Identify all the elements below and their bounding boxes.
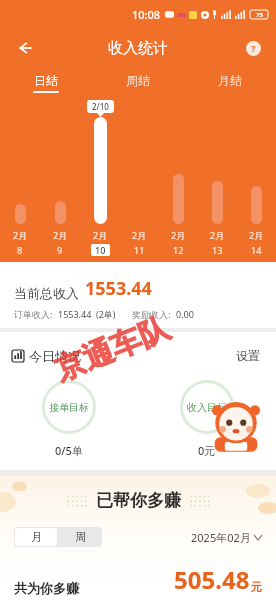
- staticText: 收入目标: [187, 401, 227, 414]
- staticText: 9: [57, 244, 63, 256]
- staticText: 京通车队: [49, 309, 175, 389]
- staticText: 0.00: [176, 308, 194, 320]
- staticText: 今日情况: [29, 348, 81, 364]
- staticText: 10:08: [132, 7, 161, 22]
- staticText: 505.48: [174, 563, 250, 596]
- button[interactable]: 月: [15, 528, 57, 546]
- staticText: 2月: [93, 229, 108, 241]
- staticText: 2025年02月: [191, 530, 251, 545]
- button[interactable]: [159, 98, 198, 224]
- staticText: 已帮你多赚: [96, 490, 181, 511]
- staticText: 周: [75, 530, 86, 544]
- button[interactable]: 日结: [0, 68, 92, 98]
- staticText: 1553.44: [58, 308, 92, 320]
- staticText: 11: [134, 244, 145, 256]
- staticText: 10: [95, 244, 106, 256]
- staticText: 订单收入:: [14, 308, 53, 320]
- button[interactable]: 收入目标: [138, 380, 276, 458]
- button[interactable]: [40, 98, 80, 224]
- staticText: 2月: [249, 229, 264, 241]
- staticText: 12: [173, 244, 184, 256]
- button[interactable]: 2/10: [80, 98, 120, 224]
- staticText: 0/5单: [55, 443, 83, 458]
- staticText: 2月: [13, 229, 28, 241]
- staticText: 日结: [34, 73, 58, 88]
- button[interactable]: 月结: [184, 68, 276, 98]
- staticText: 2月: [171, 229, 186, 241]
- button[interactable]: [198, 98, 237, 224]
- staticText: 14: [251, 244, 262, 256]
- staticText: 月结: [218, 73, 242, 88]
- staticText: 8: [17, 244, 23, 256]
- button[interactable]: Help: [240, 35, 266, 61]
- button[interactable]: 设置: [232, 344, 264, 367]
- staticText: 1553.44: [85, 276, 152, 301]
- staticText: 当前总收入: [14, 285, 79, 301]
- button[interactable]: 接单目标: [0, 380, 138, 458]
- staticText: 2月: [210, 229, 225, 241]
- staticText: 2月: [132, 229, 147, 241]
- staticText: 元: [251, 580, 262, 594]
- staticText: 奖励收入:: [132, 308, 171, 320]
- staticText: ?: [251, 42, 256, 54]
- button[interactable]: [0, 98, 40, 224]
- button[interactable]: 2025年02月: [191, 530, 262, 545]
- staticText: 13: [212, 244, 223, 256]
- staticText: 设置: [236, 348, 260, 363]
- staticText: 2/10: [92, 101, 109, 112]
- staticText: 周结: [126, 73, 150, 88]
- staticText: 0元: [198, 443, 216, 458]
- staticText: 接单目标: [49, 401, 89, 414]
- button[interactable]: 周: [59, 528, 101, 546]
- staticText: 收入统计: [108, 39, 168, 58]
- button[interactable]: 周结: [92, 68, 184, 98]
- button[interactable]: [237, 98, 276, 224]
- staticText: 2月: [53, 229, 68, 241]
- staticText: 共为你多赚: [14, 580, 79, 596]
- staticText: (2单): [96, 308, 116, 320]
- staticText: 月: [31, 530, 42, 544]
- staticText: 75: [256, 11, 263, 19]
- button[interactable]: Back: [10, 33, 40, 63]
